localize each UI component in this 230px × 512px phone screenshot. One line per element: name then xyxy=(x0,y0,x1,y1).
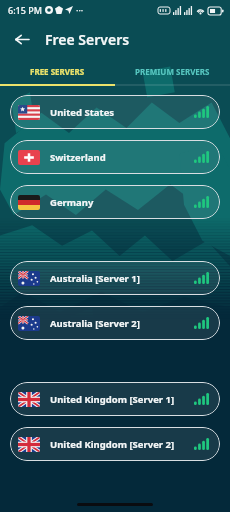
staticText: United States xyxy=(50,106,115,119)
button[interactable]: Switzerland xyxy=(10,140,220,174)
staticText: Germany xyxy=(50,196,94,209)
staticText: United Kingdom [Server 1] xyxy=(50,393,175,406)
staticText: FREE SERVERS xyxy=(30,66,85,77)
button[interactable]: Back xyxy=(6,24,36,54)
button[interactable]: United Kingdom [Server 2] xyxy=(10,427,220,461)
staticText: Free Servers xyxy=(45,30,130,49)
button[interactable]: United Kingdom [Server 1] xyxy=(10,382,220,416)
button[interactable]: Germany xyxy=(10,185,220,219)
button[interactable]: FREE SERVERS xyxy=(0,58,115,84)
button[interactable]: Australia [Server 2] xyxy=(10,306,220,340)
button[interactable]: Australia [Server 1] xyxy=(10,261,220,295)
staticText: Australia [Server 1] xyxy=(50,272,140,285)
staticText: ··· xyxy=(76,4,84,16)
staticText: Switzerland xyxy=(50,151,106,164)
staticText: United Kingdom [Server 2] xyxy=(50,438,175,451)
staticText: PREMIUM SERVERS xyxy=(135,66,210,77)
staticText: 6:15 PM xyxy=(8,4,42,16)
staticText: Australia [Server 2] xyxy=(50,317,140,330)
button[interactable]: PREMIUM SERVERS xyxy=(115,58,230,84)
button[interactable]: United States xyxy=(10,95,220,129)
